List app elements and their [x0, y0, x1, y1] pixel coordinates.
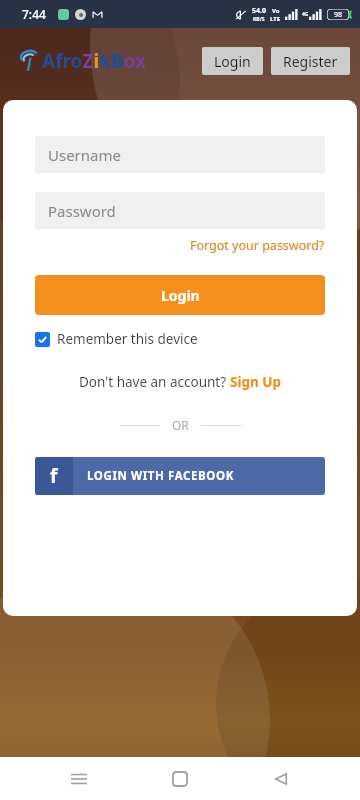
button[interactable]: Remember this device: [35, 330, 198, 348]
staticText: OR: [172, 417, 189, 433]
staticText: Register: [283, 52, 338, 71]
staticText: Vo: [272, 7, 280, 15]
staticText: Sign Up: [230, 373, 282, 391]
button[interactable]: Don't have an account?: [79, 373, 282, 391]
staticText: Remember this device: [57, 330, 198, 348]
staticText: f: [50, 463, 58, 489]
staticText: AfroZikBox: [42, 48, 147, 74]
staticText: Password: [48, 201, 116, 221]
button[interactable]: Forgot your password?: [190, 237, 325, 254]
button[interactable]: Recent apps: [57, 757, 101, 800]
staticText: KB/S: [253, 16, 265, 23]
staticText: 98: [334, 10, 343, 20]
staticText: 4G: [302, 11, 309, 18]
staticText: 54.0: [252, 6, 266, 16]
button[interactable]: Login: [35, 275, 325, 315]
staticText: Don't have an account?: [79, 373, 230, 391]
button[interactable]: Back: [259, 757, 303, 800]
staticText: Login: [161, 286, 200, 305]
staticText: Login: [214, 52, 251, 71]
staticText: LOGIN WITH FACEBOOK: [87, 468, 234, 484]
button[interactable]: f: [35, 457, 325, 495]
button[interactable]: Username: [35, 136, 325, 173]
staticText: LTE: [270, 15, 281, 23]
button[interactable]: Login: [202, 47, 263, 75]
button[interactable]: Register: [271, 47, 350, 75]
staticText: 7:44: [22, 6, 46, 22]
staticText: Username: [48, 145, 121, 165]
button[interactable]: Password: [35, 192, 325, 229]
button[interactable]: Home: [158, 757, 202, 800]
